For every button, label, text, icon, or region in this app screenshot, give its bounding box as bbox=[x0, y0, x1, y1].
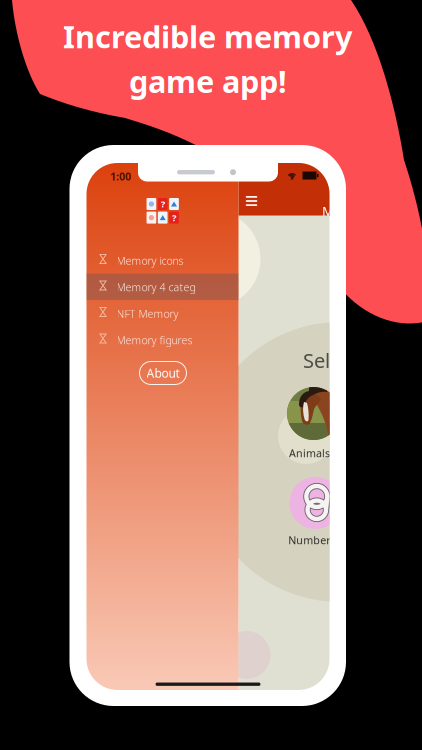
button[interactable]: Memory icons bbox=[86, 247, 238, 273]
staticText: Numbers bbox=[288, 533, 335, 547]
staticText: About bbox=[146, 365, 179, 381]
button[interactable]: Numbers bbox=[289, 477, 341, 557]
staticText: Select bbox=[303, 347, 358, 374]
staticText: Memory icons bbox=[116, 254, 183, 268]
staticText: Memory figures bbox=[116, 333, 192, 347]
staticText: Animals bbox=[289, 446, 330, 460]
button[interactable]: Animals bbox=[287, 387, 340, 467]
staticText: Incredible memory bbox=[63, 16, 353, 57]
button[interactable]: Open menu bbox=[239, 189, 263, 213]
button[interactable]: NFT Memory bbox=[86, 300, 238, 326]
button[interactable]: About bbox=[139, 361, 186, 384]
staticText: ? bbox=[172, 211, 176, 224]
staticText: ? bbox=[161, 198, 165, 210]
staticText: Memory 4 categ bbox=[116, 280, 195, 294]
staticText: NFT Memory bbox=[116, 307, 178, 321]
button[interactable]: Memory figures bbox=[86, 326, 238, 353]
button[interactable]: Memory 4 categ bbox=[86, 273, 238, 300]
staticText: 1:00 bbox=[110, 169, 131, 183]
staticText: Memory bbox=[322, 202, 375, 220]
staticText: game app! bbox=[129, 61, 287, 101]
